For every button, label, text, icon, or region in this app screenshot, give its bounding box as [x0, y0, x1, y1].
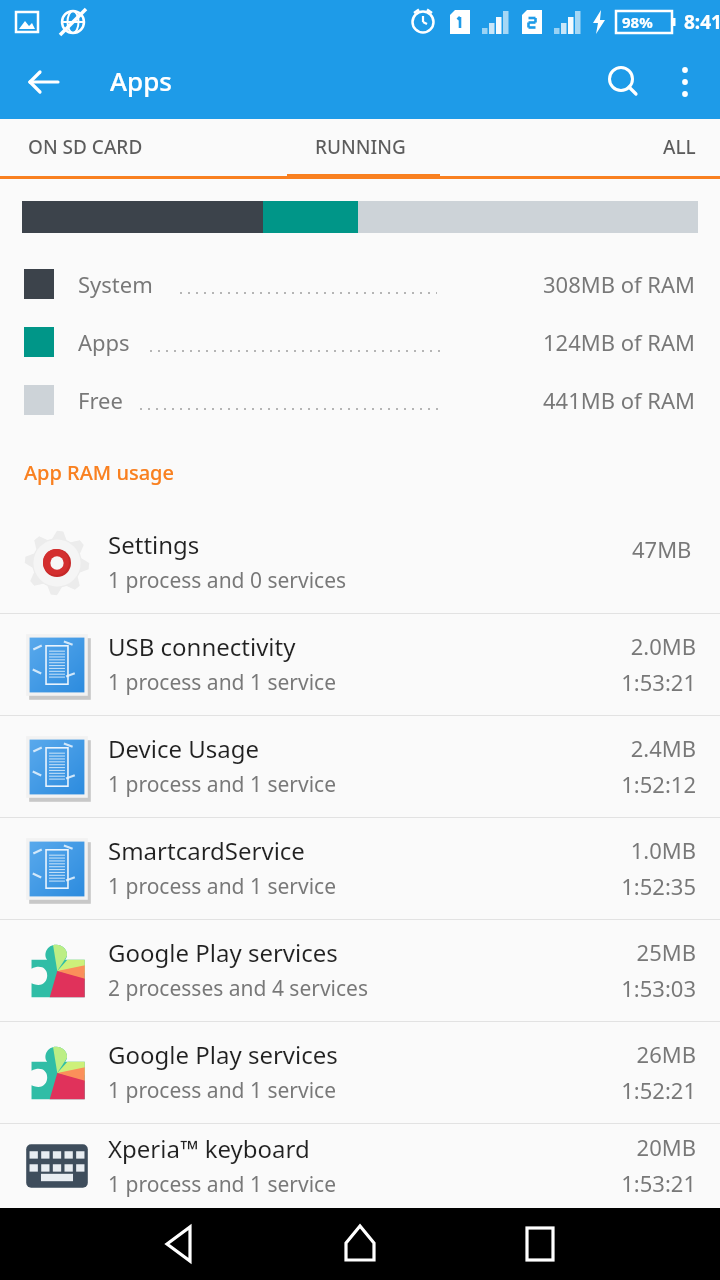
button[interactable]: ALL — [604, 119, 720, 174]
staticText: 47MB — [632, 534, 692, 564]
staticText: 1 process and 1 service — [108, 668, 337, 697]
button[interactable]: More options — [656, 53, 714, 111]
button[interactable]: System — [0, 255, 720, 313]
staticText: 2 processes and 4 services — [108, 974, 368, 1003]
button[interactable]: Recent apps — [500, 1208, 580, 1280]
button[interactable]: Device Usage — [0, 716, 720, 817]
staticText: 1 process and 1 service — [108, 770, 337, 799]
staticText: Free — [78, 385, 123, 415]
button[interactable]: SmartcardService — [0, 818, 720, 919]
button[interactable]: Google Play services — [0, 920, 720, 1021]
staticText: 1:53:21 — [621, 667, 696, 697]
button[interactable]: RUNNING — [260, 119, 460, 174]
staticText: 26MB — [636, 1039, 696, 1069]
button[interactable]: Settings — [0, 512, 720, 613]
staticText: 20MB — [636, 1132, 696, 1162]
button[interactable]: Back — [140, 1208, 220, 1280]
staticText: 1 process and 1 service — [108, 1076, 337, 1105]
button[interactable]: Free — [0, 371, 720, 429]
staticText: Google Play services — [108, 1038, 338, 1071]
staticText: 1:52:35 — [621, 871, 696, 901]
button[interactable]: Search — [592, 51, 654, 113]
staticText: 1:53:21 — [621, 1168, 696, 1198]
staticText: Xperia™ keyboard — [108, 1132, 310, 1165]
staticText: 8:41 — [684, 9, 720, 35]
staticText: SmartcardService — [108, 834, 305, 867]
staticText: Google Play services — [108, 936, 338, 969]
staticText: 1:52:21 — [621, 1075, 696, 1105]
staticText: 441MB of RAM — [543, 385, 696, 415]
staticText: 98% — [622, 12, 653, 32]
staticText: Settings — [108, 528, 200, 561]
button[interactable]: Home — [320, 1208, 400, 1280]
staticText: 1:53:03 — [621, 973, 696, 1003]
staticText: System — [78, 269, 153, 299]
staticText: 2.4MB — [630, 733, 696, 763]
button[interactable]: Back — [14, 52, 74, 112]
staticText: 1.0MB — [630, 835, 696, 865]
staticText: RUNNING — [315, 134, 406, 160]
staticText: 124MB of RAM — [543, 327, 696, 357]
button[interactable]: USB connectivity — [0, 614, 720, 715]
staticText: 1 process and 1 service — [108, 872, 337, 901]
staticText: App RAM usage — [24, 459, 174, 486]
staticText: ALL — [663, 134, 696, 160]
button[interactable]: Google Play services — [0, 1022, 720, 1123]
staticText: USB connectivity — [108, 630, 296, 663]
button[interactable]: Xperia™ keyboard — [0, 1124, 720, 1208]
staticText: 1:52:12 — [621, 769, 696, 799]
staticText: Apps — [110, 63, 172, 98]
button[interactable]: ON SD CARD — [0, 119, 180, 174]
staticText: 1 process and 0 services — [108, 566, 347, 595]
staticText: 1 process and 1 service — [108, 1170, 337, 1199]
staticText: Device Usage — [108, 732, 260, 765]
staticText: 2.0MB — [630, 631, 696, 661]
staticText: ON SD CARD — [28, 134, 143, 160]
staticText: Apps — [78, 327, 130, 357]
staticText: 25MB — [636, 937, 696, 967]
staticText: 308MB of RAM — [543, 269, 696, 299]
button[interactable]: Apps — [0, 313, 720, 371]
